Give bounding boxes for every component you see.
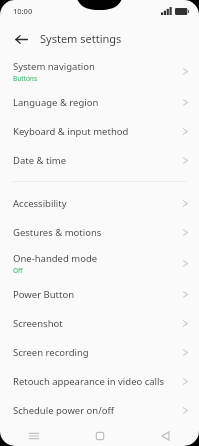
- button[interactable]: Keyboard & input method: [0, 117, 199, 146]
- staticText: Gestures & motions: [13, 226, 102, 239]
- staticText: Language & region: [13, 96, 99, 109]
- staticText: Accessibility: [13, 197, 67, 210]
- button[interactable]: Home: [67, 425, 133, 446]
- button[interactable]: Screenshot: [0, 309, 199, 338]
- button[interactable]: Schedule power on/off: [0, 396, 199, 425]
- staticText: Off: [13, 266, 23, 275]
- button[interactable]: System navigation: [0, 55, 199, 88]
- button[interactable]: Power Button: [0, 280, 199, 309]
- staticText: Screen recording: [13, 346, 89, 359]
- staticText: One-handed mode: [13, 252, 98, 265]
- button[interactable]: Recent apps: [0, 425, 67, 446]
- button[interactable]: Language & region: [0, 88, 199, 117]
- staticText: Power Button: [13, 288, 75, 301]
- button[interactable]: Retouch appearance in video calls: [0, 367, 199, 396]
- staticText: Screenshot: [13, 317, 63, 330]
- staticText: Date & time: [13, 154, 67, 167]
- button[interactable]: One-handed mode: [0, 247, 199, 280]
- staticText: Keyboard & input method: [13, 125, 129, 138]
- staticText: System settings: [40, 31, 122, 46]
- button[interactable]: Back: [8, 26, 34, 52]
- staticText: 10:00: [13, 6, 33, 16]
- button[interactable]: Accessibility: [0, 189, 199, 218]
- button[interactable]: Gestures & motions: [0, 218, 199, 247]
- staticText: Retouch appearance in video calls: [13, 375, 165, 388]
- staticText: Schedule power on/off: [13, 404, 115, 417]
- button[interactable]: Date & time: [0, 146, 199, 175]
- staticText: Buttons: [13, 74, 37, 83]
- button[interactable]: Back: [133, 425, 199, 446]
- button[interactable]: Screen recording: [0, 338, 199, 367]
- staticText: System navigation: [13, 60, 95, 73]
